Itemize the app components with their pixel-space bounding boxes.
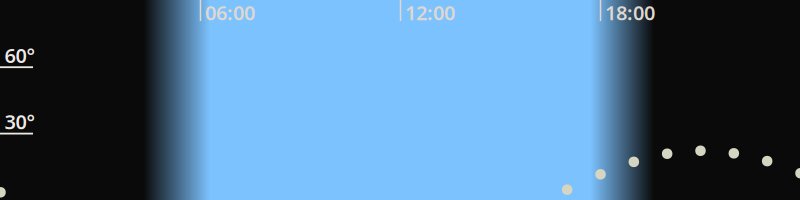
staticText: 06:00 — [205, 0, 255, 26]
staticText: 18:00 — [605, 0, 655, 26]
staticText: 12:00 — [405, 0, 455, 26]
staticText: 60° — [4, 42, 35, 68]
staticText: 30° — [4, 108, 35, 135]
